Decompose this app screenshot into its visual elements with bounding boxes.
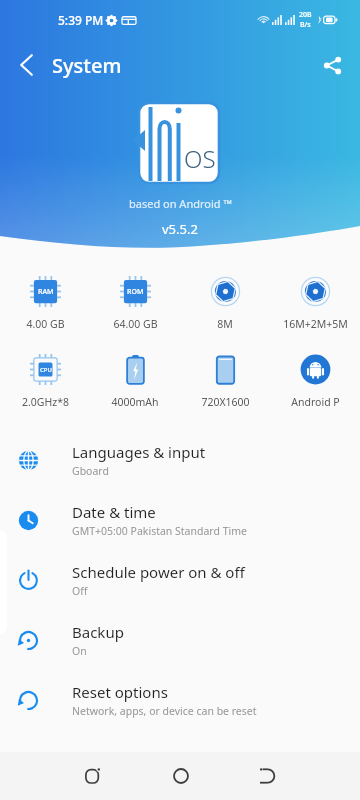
button[interactable]: ROM (90, 276, 180, 331)
button[interactable]: Reset options (0, 670, 360, 730)
button[interactable]: CPU (0, 354, 90, 409)
staticText: Reset options (72, 682, 168, 702)
staticText: 5:39 PM (58, 12, 104, 28)
button[interactable]: Languages & input (0, 430, 360, 490)
staticText: B/s (300, 20, 311, 30)
staticText: 16M+2M+5M (283, 317, 348, 331)
staticText: Off (72, 584, 88, 598)
button[interactable]: Back (242, 752, 291, 800)
staticText: Network, apps, or device can be reset (72, 704, 257, 718)
staticText: 4000mAh (111, 395, 159, 409)
staticText: OS (184, 142, 216, 175)
staticText: based on Android ™ (129, 196, 232, 211)
staticText: GMT+05:00 Pakistan Standard Time (72, 524, 247, 538)
staticText: Android P (291, 395, 340, 409)
button[interactable]: 720X1600 (180, 354, 270, 409)
button[interactable]: 16M+2M+5M (270, 276, 360, 331)
staticText: 2.0GHz*8 (22, 395, 69, 409)
button[interactable]: Share (309, 42, 355, 88)
staticText: 4.00 GB (26, 317, 65, 331)
staticText: ROM (127, 287, 144, 297)
staticText: Backup (72, 622, 124, 642)
staticText: Schedule power on & off (72, 562, 245, 582)
button[interactable]: 4000mAh (90, 354, 180, 409)
staticText: System (52, 52, 122, 79)
button[interactable]: Home (156, 752, 205, 800)
staticText: v5.5.2 (162, 220, 198, 238)
staticText: Date & time (72, 502, 156, 522)
button[interactable]: Recent apps (68, 752, 117, 800)
button[interactable]: Android P (270, 354, 360, 409)
button[interactable]: 8M (180, 276, 270, 331)
button[interactable]: Schedule power on & off (0, 550, 360, 610)
staticText: 64.00 GB (113, 317, 158, 331)
button[interactable]: Date & time (0, 490, 360, 550)
staticText: Gboard (72, 464, 109, 478)
staticText: 720X1600 (201, 395, 250, 409)
staticText: CPU (40, 366, 52, 374)
staticText: 8M (217, 317, 233, 331)
button[interactable]: RAM (0, 276, 90, 331)
staticText: RAM (38, 287, 54, 297)
button[interactable]: Backup (0, 610, 360, 670)
staticText: On (72, 644, 87, 658)
button[interactable]: Back (0, 39, 52, 91)
staticText: 20B (299, 10, 312, 20)
staticText: Languages & input (72, 442, 206, 462)
